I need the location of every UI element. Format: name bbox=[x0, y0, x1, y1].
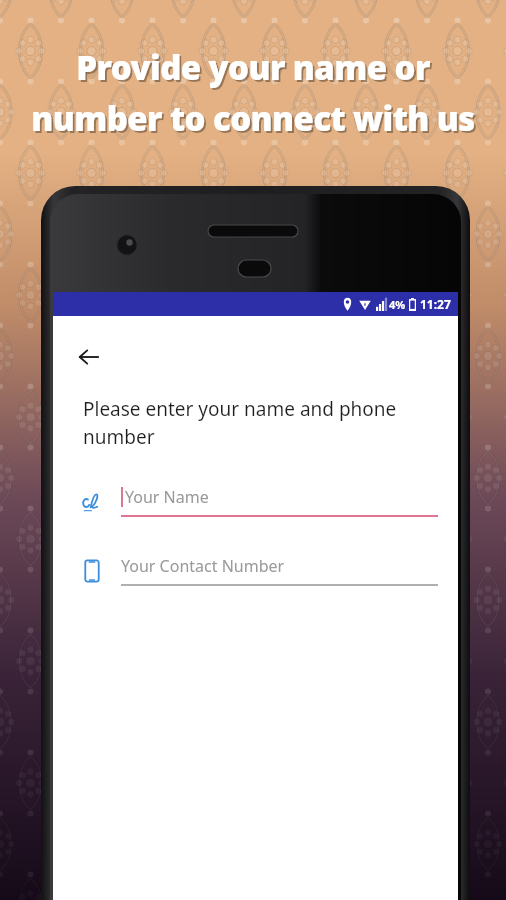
button[interactable]: Name bbox=[77, 486, 438, 517]
staticText: 11:27 bbox=[420, 296, 451, 312]
staticText: number to connect with us bbox=[33, 98, 477, 143]
button[interactable]: Back bbox=[70, 338, 108, 376]
button[interactable]: Phone number bbox=[77, 555, 438, 586]
staticText: Your Name bbox=[125, 486, 209, 508]
other: Phone number bbox=[77, 556, 107, 586]
staticText: number to connect with us bbox=[31, 96, 475, 141]
other: Name bbox=[77, 487, 107, 517]
staticText: 4% bbox=[389, 297, 406, 312]
staticText: Provide your name or bbox=[78, 47, 432, 92]
staticText: Your Contact Number bbox=[121, 555, 285, 577]
staticText: Please enter your name and phone number bbox=[83, 396, 432, 450]
staticText: Provide your name or bbox=[76, 45, 430, 90]
